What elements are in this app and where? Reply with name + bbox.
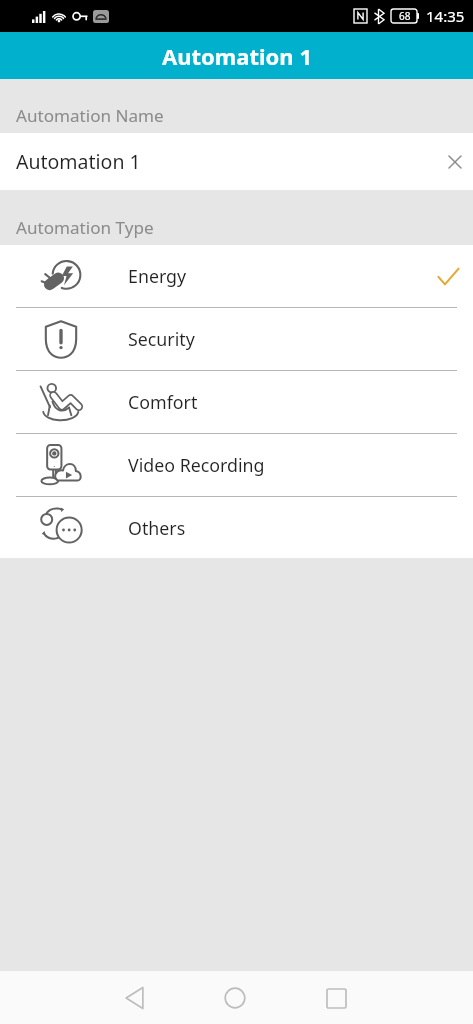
staticText: Automation 1 [16,148,440,175]
staticText: Automation 1 [162,41,312,71]
staticText: Automation Name [16,104,164,127]
staticText: Video Recording [128,453,429,477]
button[interactable]: Recents [316,978,356,1018]
staticText: Others [128,516,429,540]
button[interactable]: Security [0,308,473,371]
button[interactable]: Automation 1 [0,133,473,190]
staticText: 14:35 [426,6,465,26]
staticText: Energy [128,264,429,288]
button[interactable]: Video Recording [0,434,473,497]
button[interactable]: Home [215,978,255,1018]
button[interactable]: Others [0,497,473,558]
staticText: Security [128,327,429,351]
button[interactable]: Energy [0,245,473,308]
staticText: Comfort [128,390,429,414]
staticText: Automation Type [16,216,154,239]
button[interactable]: Clear [440,147,470,177]
staticText: 68 [399,9,411,23]
button[interactable]: Back [114,978,154,1018]
button[interactable]: Comfort [0,371,473,434]
